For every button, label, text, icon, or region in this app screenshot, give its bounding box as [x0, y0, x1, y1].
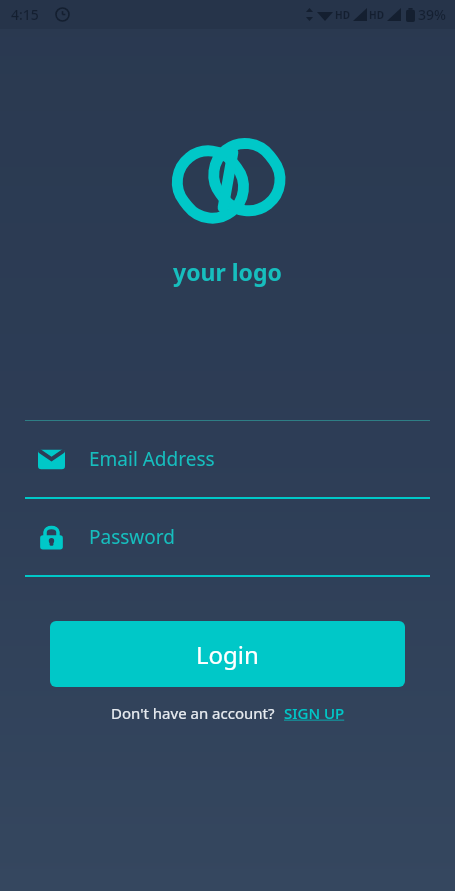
staticText: Login	[196, 638, 259, 671]
staticText: your logo	[173, 256, 282, 287]
button[interactable]: SIGN UP	[284, 703, 345, 723]
staticText: 4:15	[11, 5, 39, 24]
staticText: Don't have an account?	[111, 703, 275, 723]
staticText: Password	[89, 524, 175, 550]
button[interactable]: Email	[0, 421, 455, 497]
staticText: HD	[335, 8, 350, 22]
staticText: HD	[369, 8, 384, 22]
other: Password	[38, 524, 65, 551]
other: Email	[38, 446, 65, 473]
staticText: Email Address	[89, 446, 215, 472]
button[interactable]: Password	[0, 499, 455, 575]
staticText: SIGN UP	[284, 703, 345, 723]
staticText: 39%	[418, 5, 446, 24]
button[interactable]: Login	[50, 621, 405, 687]
